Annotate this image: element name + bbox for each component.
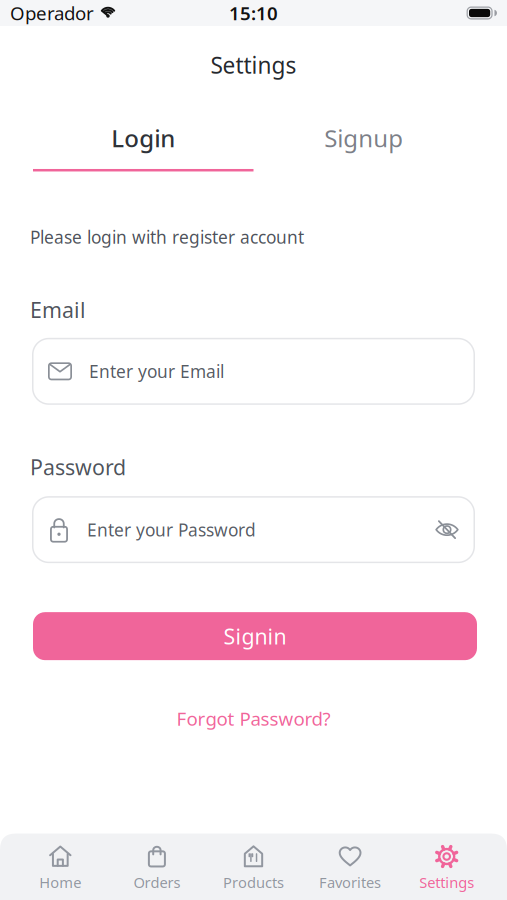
staticText: Orders xyxy=(133,872,180,892)
staticText: 15:10 xyxy=(229,1,278,25)
staticText: Settings xyxy=(419,872,474,892)
staticText: Settings xyxy=(210,50,296,80)
button[interactable]: Signin xyxy=(33,612,477,660)
button[interactable]: Products xyxy=(205,843,302,892)
staticText: Enter your Password xyxy=(87,518,256,541)
staticText: Signup xyxy=(324,122,403,154)
button[interactable]: Home xyxy=(12,843,109,892)
staticText: Password xyxy=(30,453,126,481)
staticText: Products xyxy=(223,872,284,892)
button[interactable]: Settings xyxy=(398,843,495,892)
staticText: Login xyxy=(111,122,175,154)
staticText: Please login with register account xyxy=(30,225,304,248)
staticText: Forgot Password? xyxy=(176,706,330,731)
staticText: Signin xyxy=(223,622,286,650)
button[interactable]: Login xyxy=(33,122,253,171)
staticText: Favorites xyxy=(319,872,381,892)
staticText: Email xyxy=(30,295,86,324)
staticText: Enter your Email xyxy=(89,360,224,383)
staticText: Operador xyxy=(10,1,94,25)
button[interactable]: Show password xyxy=(434,518,460,542)
button[interactable]: Favorites xyxy=(302,843,398,892)
button[interactable]: Signup xyxy=(253,122,474,171)
button[interactable]: Forgot Password? xyxy=(176,706,330,731)
button[interactable]: Orders xyxy=(109,843,205,892)
staticText: Home xyxy=(39,872,81,892)
